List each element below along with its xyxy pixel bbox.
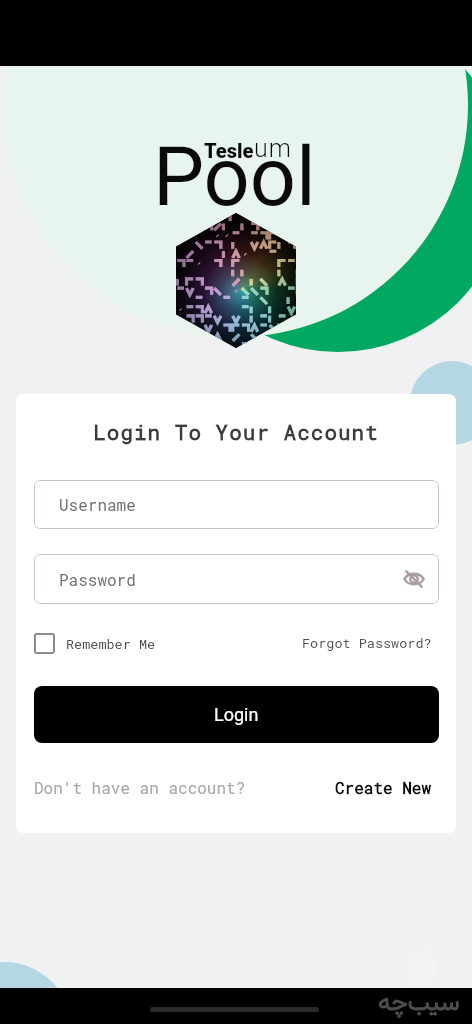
button[interactable]: Remember Me (34, 633, 156, 654)
button[interactable]: Password (34, 554, 439, 604)
staticText: um (254, 134, 292, 163)
staticText: Tesle (204, 139, 254, 162)
button[interactable]: Forgot Password? (302, 634, 432, 652)
button[interactable]: Login (34, 686, 439, 743)
staticText: سیب‌چه (378, 984, 460, 1020)
button[interactable]: Show password (401, 566, 427, 592)
staticText: Remember Me (66, 635, 156, 653)
staticText: Don't have an account? (34, 777, 246, 798)
staticText: Login (214, 704, 259, 725)
staticText: Login To Your Account (16, 418, 456, 446)
staticText: Password (59, 569, 136, 590)
button[interactable]: Create New (335, 777, 432, 798)
button[interactable]: Username (34, 480, 439, 529)
staticText: Pool (153, 130, 316, 225)
staticText: Username (59, 494, 136, 515)
